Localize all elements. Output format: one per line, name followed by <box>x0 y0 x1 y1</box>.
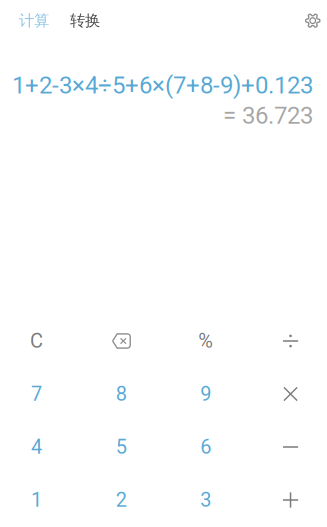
button[interactable]: Plus <box>248 473 327 526</box>
staticText: 4 <box>31 435 42 459</box>
staticText: 计算 <box>19 11 49 30</box>
button[interactable]: Delete <box>79 314 163 367</box>
button[interactable]: % <box>163 314 248 367</box>
staticText: 3 <box>200 488 211 512</box>
staticText: 6 <box>200 435 211 459</box>
staticText: 1+2-3×4÷5+6×(7+8-9)+0.123 <box>12 71 313 99</box>
button[interactable]: Divide <box>248 314 327 367</box>
staticText: 7 <box>31 382 42 406</box>
button[interactable]: 转换 <box>65 7 105 34</box>
staticText: 8 <box>116 382 127 406</box>
button[interactable]: 6 <box>163 420 248 473</box>
staticText: 5 <box>116 435 127 459</box>
staticText: 转换 <box>70 11 100 30</box>
button[interactable]: 3 <box>163 473 248 526</box>
button[interactable]: 8 <box>79 367 163 420</box>
button[interactable]: 9 <box>163 367 248 420</box>
button[interactable]: 7 <box>0 367 79 420</box>
button[interactable]: 1 <box>0 473 79 526</box>
button[interactable]: Minus <box>248 420 327 473</box>
staticText: 1 <box>31 488 42 512</box>
button[interactable]: C <box>0 314 79 367</box>
button[interactable]: Settings <box>300 9 325 32</box>
staticText: 9 <box>200 382 211 406</box>
button[interactable]: 计算 <box>14 7 54 34</box>
button[interactable]: 4 <box>0 420 79 473</box>
staticText: 2 <box>116 488 127 512</box>
button[interactable]: 2 <box>79 473 163 526</box>
button[interactable]: Multiply <box>248 367 327 420</box>
staticText: = 36.723 <box>223 101 313 129</box>
staticText: % <box>198 329 213 353</box>
button[interactable]: 5 <box>79 420 163 473</box>
staticText: C <box>30 329 43 353</box>
